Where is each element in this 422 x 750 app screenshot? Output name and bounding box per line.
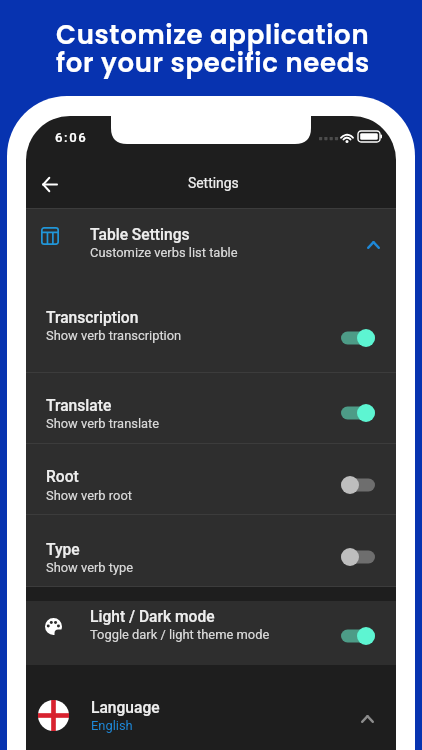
staticText: Show verb root [46,488,132,503]
button[interactable]: Toggle on [339,625,377,647]
button[interactable]: Toggle on [339,402,377,424]
staticText: Settings [188,175,239,191]
button[interactable] [26,372,396,443]
staticText: Customize verbs list table [90,245,238,260]
staticText: Show verb transcription [46,328,182,343]
button[interactable] [26,601,396,665]
staticText: Show verb translate [46,416,160,431]
button[interactable] [26,301,396,372]
staticText: Table Settings [90,226,190,244]
staticText: Show verb type [46,560,134,575]
staticText: Root [46,468,79,486]
button[interactable] [26,208,396,301]
staticText: Toggle dark / light theme mode [90,627,270,642]
staticText: for your specific needs [56,45,370,81]
staticText: Light / Dark mode [90,608,215,626]
button[interactable]: Toggle on [339,327,377,349]
button[interactable]: Toggle off [339,474,377,496]
staticText: Type [46,541,80,559]
button[interactable]: Back [36,170,64,198]
staticText: 6:06 [55,130,88,145]
button[interactable]: Collapse [361,233,385,257]
button[interactable] [26,682,396,750]
staticText: Transcription [46,309,139,327]
button[interactable] [26,514,396,586]
button[interactable]: Toggle off [339,546,377,568]
button[interactable] [26,443,396,515]
staticText: Translate [46,397,112,415]
staticText: English [91,718,133,733]
staticText: Customize application [56,17,370,53]
button[interactable]: Collapse [355,707,379,731]
staticText: Language [91,699,160,717]
